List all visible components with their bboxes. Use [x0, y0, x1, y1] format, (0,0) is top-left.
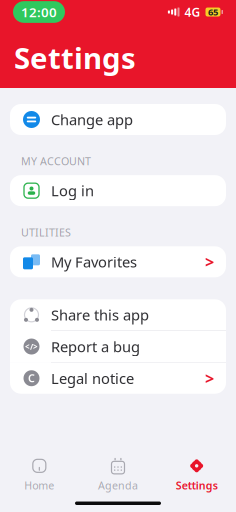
staticText: Change app	[51, 110, 133, 129]
staticText: >	[205, 251, 214, 272]
staticText: Report a bug	[51, 337, 140, 356]
button[interactable]: Change app	[10, 104, 226, 135]
staticText: My Favorites	[51, 252, 137, 272]
staticText: Home	[24, 478, 54, 492]
staticText: Settings	[176, 478, 218, 492]
staticText: </>	[25, 341, 38, 352]
staticText: 12:00	[21, 3, 57, 21]
staticText: Legal notice	[51, 368, 134, 388]
staticText: UTILITIES	[21, 225, 71, 239]
button[interactable]: C	[10, 363, 226, 394]
staticText: Log in	[51, 181, 94, 200]
staticText: C	[28, 371, 35, 385]
button[interactable]: Settings	[157, 448, 236, 492]
button[interactable]: </>	[10, 331, 226, 363]
button[interactable]: Home	[0, 448, 79, 492]
staticText: MY ACCOUNT	[21, 154, 91, 168]
staticText: Share this app	[51, 305, 149, 325]
button[interactable]: Agenda	[79, 448, 157, 492]
staticText: 4G	[184, 4, 200, 20]
button[interactable]: My Favorites	[10, 246, 226, 277]
button[interactable]: Share this app	[10, 299, 226, 331]
button[interactable]: Log in	[10, 175, 226, 206]
staticText: Agenda	[98, 478, 138, 492]
staticText: Settings	[14, 38, 136, 77]
staticText: 65	[208, 6, 218, 18]
staticText: >	[205, 368, 214, 389]
